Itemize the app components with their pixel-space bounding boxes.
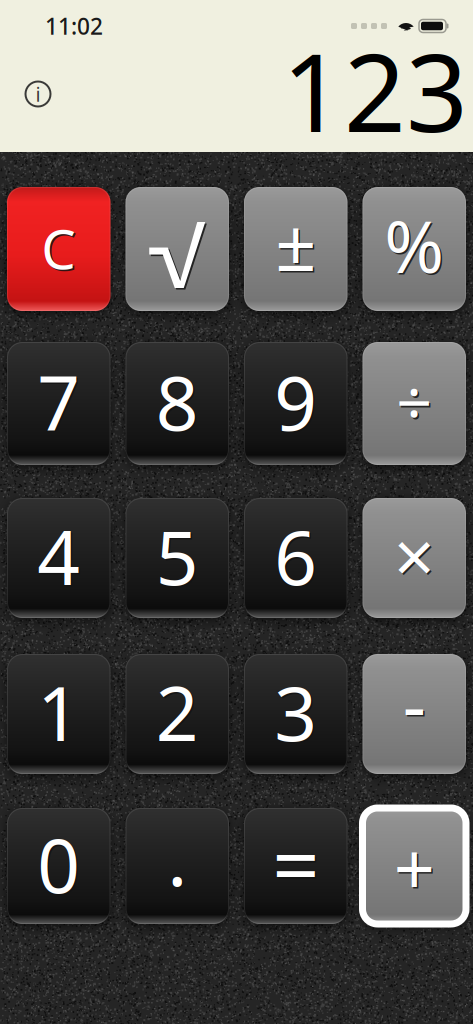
staticText: i (35, 81, 40, 107)
staticText: ÷ (396, 360, 432, 443)
staticText: 0 (37, 814, 80, 914)
staticText: 1 (39, 664, 82, 763)
staticText: . (169, 809, 189, 908)
button[interactable]: = (244, 808, 347, 924)
staticText: + (395, 821, 436, 916)
staticText: - (404, 657, 427, 752)
staticText: 2 (157, 664, 200, 763)
staticText: ÷ (398, 361, 434, 445)
button[interactable]: 3 (244, 654, 347, 774)
staticText: C (41, 212, 76, 284)
staticText: 123 (282, 18, 468, 162)
staticText: 0 (39, 816, 82, 915)
button[interactable]: 7 (7, 342, 110, 465)
button[interactable]: % (362, 187, 466, 311)
staticText: % (386, 199, 446, 294)
staticText: 2 (156, 662, 199, 762)
button[interactable]: ÷ (362, 342, 466, 465)
button[interactable]: 9 (244, 342, 347, 465)
button[interactable]: × (362, 498, 466, 618)
button[interactable]: 2 (125, 654, 229, 774)
staticText: 4 (37, 506, 80, 606)
staticText: 7 (39, 353, 82, 453)
button[interactable]: 5 (125, 498, 229, 618)
staticText: 8 (157, 353, 200, 453)
button[interactable]: 6 (244, 498, 347, 618)
button[interactable]: - (362, 654, 466, 774)
staticText: 3 (274, 662, 317, 762)
button[interactable]: ± (244, 187, 347, 311)
staticText: = (272, 808, 319, 918)
staticText: + (394, 819, 435, 915)
staticText: 9 (274, 352, 317, 451)
button[interactable]: 4 (7, 498, 110, 618)
staticText: - (403, 655, 426, 751)
staticText: 7 (37, 352, 80, 451)
staticText: × (395, 509, 436, 604)
button[interactable]: + (362, 808, 466, 924)
staticText: ± (277, 197, 318, 292)
staticText: C (43, 213, 78, 286)
staticText: × (394, 507, 435, 603)
staticText: ± (275, 195, 316, 291)
button[interactable]: Info (25, 81, 51, 107)
staticText: 8 (156, 352, 199, 451)
staticText: 9 (276, 353, 319, 453)
button[interactable]: 1 (7, 654, 110, 774)
staticText: 6 (276, 508, 319, 607)
staticText: 4 (39, 508, 82, 607)
staticText: 11:02 (45, 11, 103, 41)
staticText: . (167, 807, 187, 907)
staticText: 5 (156, 506, 199, 606)
button[interactable]: 0 (7, 808, 110, 924)
staticText: % (384, 197, 444, 293)
button[interactable] (125, 187, 229, 311)
button[interactable]: 8 (125, 342, 229, 465)
staticText: 1 (37, 662, 80, 762)
staticText: 3 (276, 664, 319, 763)
button[interactable]: . (125, 808, 229, 924)
staticText: 6 (274, 506, 317, 606)
staticText: = (274, 810, 321, 919)
button[interactable]: C (7, 187, 110, 311)
staticText: 5 (157, 508, 200, 607)
